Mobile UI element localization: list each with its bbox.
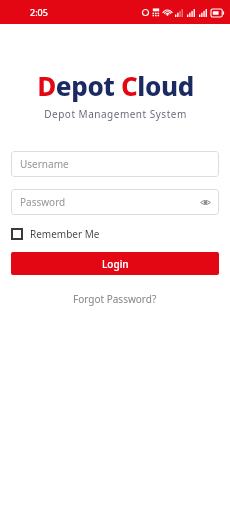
staticText: 2:05: [30, 6, 48, 18]
button[interactable]: Password: [11, 189, 219, 215]
staticText: Username: [20, 157, 69, 171]
button[interactable]: Show password: [198, 195, 212, 209]
staticText: Remember Me: [30, 227, 100, 241]
staticText: Depot Management System: [44, 107, 187, 121]
button[interactable]: Login: [11, 252, 219, 275]
staticText: Login: [102, 257, 129, 271]
staticText: Password: [20, 195, 66, 209]
button[interactable]: Username: [11, 151, 219, 177]
staticText: Depot Cloud: [37, 68, 194, 103]
button[interactable]: Remember Me: [11, 224, 100, 244]
staticText: Forgot Password?: [73, 292, 157, 306]
button[interactable]: Forgot Password?: [63, 289, 167, 309]
